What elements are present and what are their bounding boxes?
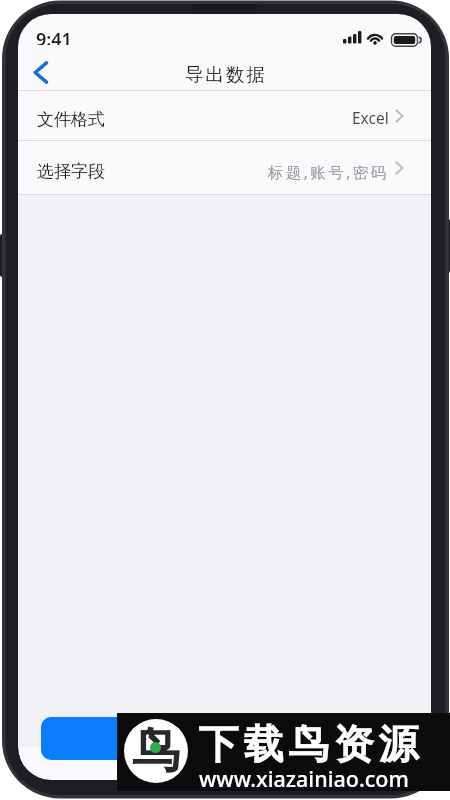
staticText: Excel (352, 107, 389, 128)
staticText: 下载鸟资源 (196, 719, 421, 765)
staticText: 9:41 (36, 27, 72, 45)
staticText: 鸟 (132, 721, 180, 781)
staticText: 文件格式 (37, 109, 105, 130)
button[interactable]: 文件格式 (18, 91, 431, 140)
staticText: 导出 (209, 729, 241, 749)
button[interactable]: 选择字段 (18, 141, 431, 194)
button[interactable]: 导出 (41, 717, 409, 760)
staticText: 选择字段 (37, 161, 105, 182)
staticText: 导出数据 (184, 63, 266, 86)
button[interactable] (24, 56, 58, 88)
staticText: 标题,账号,密码 (268, 161, 389, 182)
staticText: www.xiazainiao.com (199, 764, 409, 788)
